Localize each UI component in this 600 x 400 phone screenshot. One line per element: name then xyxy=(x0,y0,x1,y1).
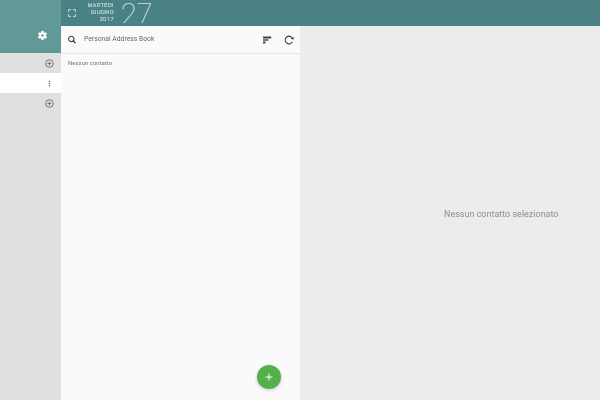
staticText: GIUGNO xyxy=(90,9,114,16)
button[interactable]: Add contact xyxy=(257,365,281,389)
staticText: Nessun contatto xyxy=(68,59,113,66)
staticText: MARTEDI xyxy=(87,2,114,9)
staticText: 27 xyxy=(121,0,153,23)
button[interactable]: Settings xyxy=(33,26,51,44)
button[interactable]: Search xyxy=(62,30,81,49)
button[interactable]: Sort xyxy=(257,30,276,49)
button[interactable]: Toggle fullscreen xyxy=(64,5,80,21)
button[interactable]: Add account xyxy=(0,93,61,113)
staticText: 2017 xyxy=(99,16,114,23)
button[interactable]: More options xyxy=(0,73,61,93)
button[interactable]: Add account xyxy=(0,53,61,73)
staticText: Nessun contatto selezionato xyxy=(444,209,559,220)
staticText: Personal Address Book xyxy=(84,35,155,43)
button[interactable]: Refresh xyxy=(279,30,298,49)
